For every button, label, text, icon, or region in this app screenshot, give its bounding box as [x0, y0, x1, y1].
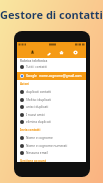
staticText: Nome e cognome	[26, 136, 53, 140]
staticText: unisci duplicati	[26, 105, 49, 109]
button[interactable]: elimina duplicati	[17, 118, 86, 125]
staticText: Rubrica telefonica	[20, 59, 48, 63]
button[interactable]: Nessuna email	[17, 149, 86, 156]
button[interactable]: Sfoltisci duplicati	[17, 96, 86, 103]
staticText: Google nome.cognome@gmail.com	[26, 74, 82, 78]
button[interactable]: duplicati contatti	[17, 88, 86, 95]
staticText: Gestore di contatti	[0, 7, 103, 22]
staticText: Nessuna email	[26, 151, 49, 155]
button[interactable]: Tutti i contatti	[17, 63, 86, 70]
button[interactable]: unisci duplicati	[17, 103, 86, 110]
button[interactable]: Phone	[40, 47, 54, 58]
staticText: Invia contatti	[20, 128, 41, 132]
staticText: Azioni	[20, 82, 30, 86]
button[interactable]: I nuovi amici	[17, 111, 86, 118]
staticText: Nome e cognome numerati	[26, 144, 68, 148]
staticText: duplicati contatti	[26, 90, 52, 94]
staticText: Tutti i contatti	[26, 65, 47, 69]
button[interactable]: Google nome.cognome@gmail.com	[17, 72, 86, 80]
button[interactable]: Nome e cognome	[17, 134, 86, 141]
staticText: Gestione account	[20, 159, 47, 163]
button[interactable]: Settings	[68, 47, 82, 58]
staticText: Sfoltisci duplicati	[26, 98, 52, 102]
button[interactable]: Nome e cognome numerati	[17, 142, 86, 149]
staticText: I nuovi amici	[26, 113, 45, 117]
button[interactable]: Contacts	[25, 47, 39, 58]
button[interactable]: Favorites	[54, 47, 68, 58]
staticText: elimina duplicati	[26, 120, 51, 124]
